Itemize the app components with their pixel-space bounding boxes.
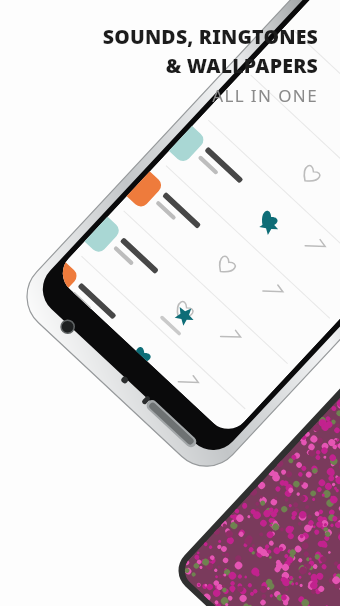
staticText: SOUNDS, RINGTONES bbox=[16, 23, 318, 50]
staticText: & WALLPAPERS bbox=[16, 52, 318, 79]
button[interactable]: Wallpaper preview bbox=[0, 0, 340, 606]
staticText: ALL IN ONE bbox=[16, 84, 318, 107]
button[interactable]: Phone preview showing ringtone list bbox=[0, 0, 340, 606]
